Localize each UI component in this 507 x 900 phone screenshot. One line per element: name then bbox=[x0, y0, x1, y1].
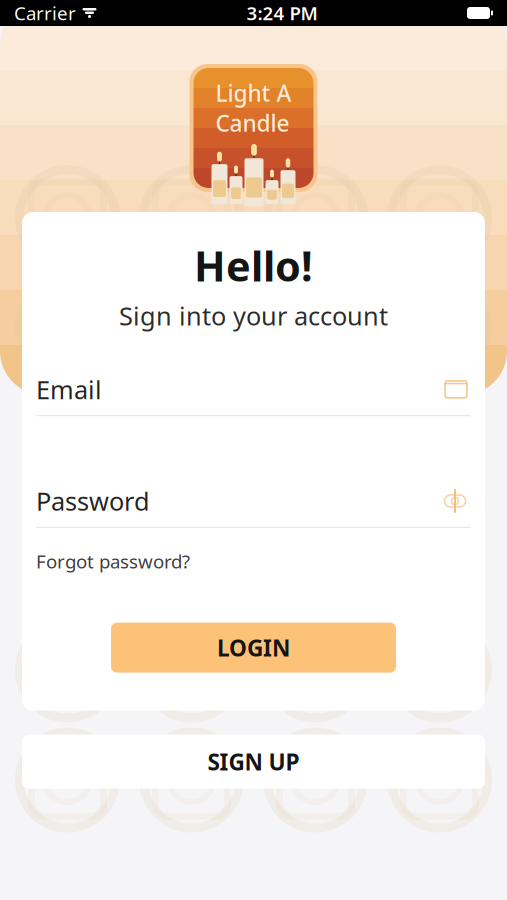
staticText: Carrier bbox=[14, 1, 76, 25]
button[interactable]: Forgot password? bbox=[36, 545, 190, 578]
staticText: Password bbox=[36, 484, 150, 518]
staticText: Sign into your account bbox=[119, 299, 388, 332]
staticText: 3:24 PM bbox=[246, 1, 317, 25]
staticText: Forgot password? bbox=[36, 549, 190, 574]
button[interactable]: SIGN UP bbox=[22, 735, 485, 789]
button[interactable]: LOGIN bbox=[111, 623, 396, 673]
staticText: LOGIN bbox=[217, 633, 290, 663]
staticText: Light A Candle bbox=[215, 78, 291, 138]
staticText: Hello! bbox=[194, 238, 313, 293]
staticText: Email bbox=[36, 372, 102, 406]
button[interactable]: Show password bbox=[439, 487, 471, 515]
button[interactable]: Email bbox=[441, 377, 471, 402]
staticText: SIGN UP bbox=[207, 747, 299, 777]
